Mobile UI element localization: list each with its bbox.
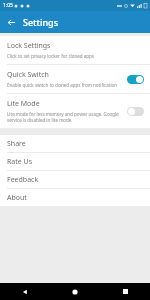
staticText: About (7, 193, 27, 203)
button[interactable]: About (0, 189, 150, 206)
button[interactable]: Quick Switch (0, 65, 150, 93)
staticText: Feedback (7, 175, 39, 185)
button[interactable]: Lite Mode (0, 94, 150, 128)
staticText: Lock Settings (7, 41, 51, 51)
staticText: Settings (23, 16, 59, 28)
button[interactable]: Toggle on (127, 75, 144, 84)
button[interactable]: Feedback (0, 171, 150, 188)
staticText: Rate Us (7, 157, 33, 167)
staticText: Click to set privacy locker for cloned a… (7, 53, 94, 59)
staticText: 1:05 (3, 2, 13, 9)
button[interactable]: Share (0, 135, 150, 152)
staticText: Share (7, 139, 26, 149)
button[interactable]: Lock Settings (0, 36, 150, 64)
button[interactable]: Rate Us (0, 153, 150, 170)
button[interactable]: Home (50, 283, 100, 300)
staticText: Quick Switch (7, 70, 49, 80)
staticText: Lite mode for less memory and power usag… (7, 111, 123, 123)
button[interactable]: Back (4, 15, 18, 29)
button[interactable]: Recents (100, 283, 150, 300)
button[interactable]: Toggle off (127, 107, 144, 116)
staticText: Lite Mode (7, 99, 40, 109)
staticText: Enable quick switch to cloned apps from … (7, 82, 118, 88)
button[interactable]: Back (0, 283, 50, 300)
